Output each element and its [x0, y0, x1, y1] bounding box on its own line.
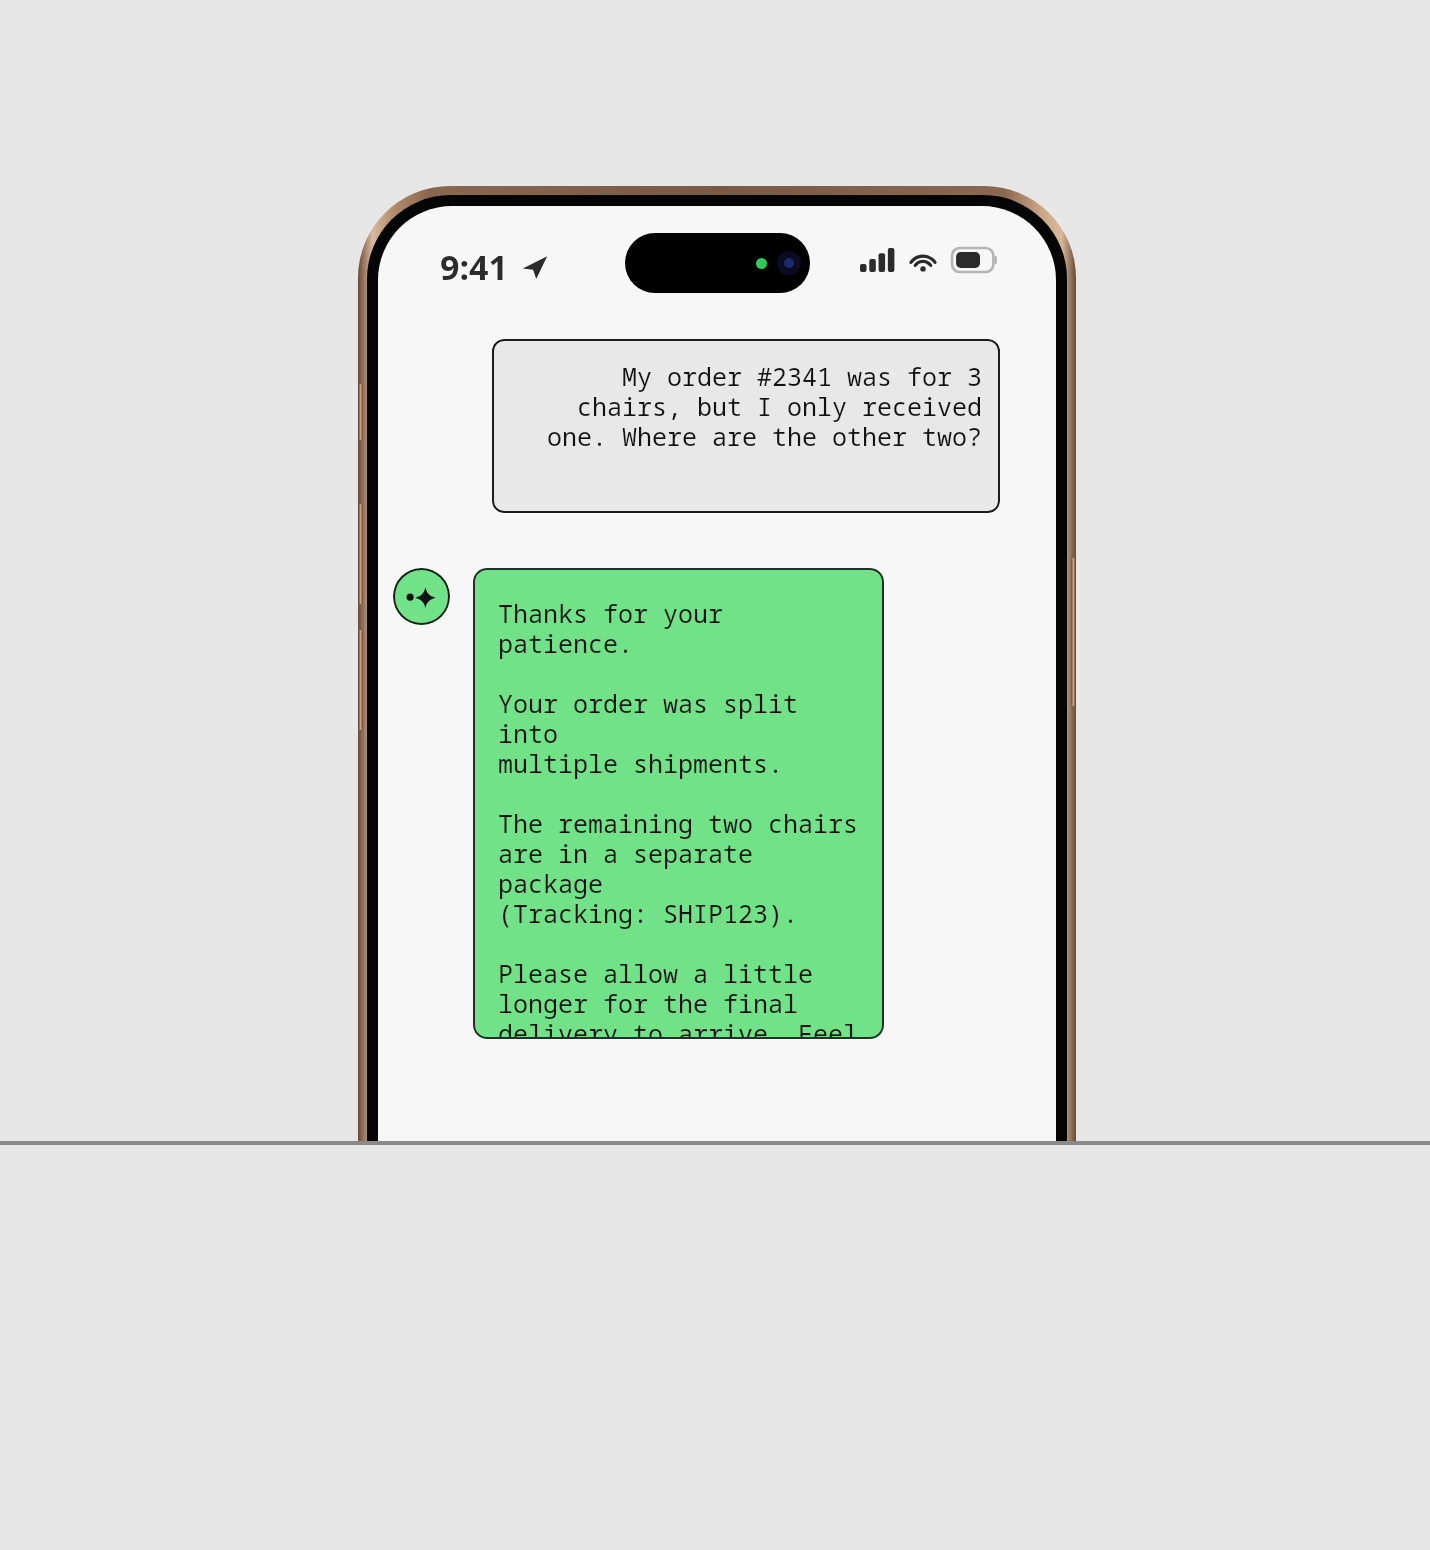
- staticText: Thanks for your patience. Your order was…: [498, 596, 868, 1039]
- staticText: 9:41: [440, 244, 508, 290]
- staticText: My order #2341 was for 3 chairs, but I o…: [510, 359, 982, 453]
- button[interactable]: My order #2341 was for 3 chairs, but I o…: [492, 339, 1000, 513]
- button[interactable]: Assistant: [393, 568, 450, 625]
- button[interactable]: Thanks for your patience. Your order was…: [473, 568, 884, 1039]
